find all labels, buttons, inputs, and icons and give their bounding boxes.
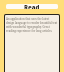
staticText: Read: [24, 4, 40, 9]
staticText: An application that uses the latest desi…: [6, 17, 58, 33]
button[interactable]: Read: [6, 4, 58, 9]
